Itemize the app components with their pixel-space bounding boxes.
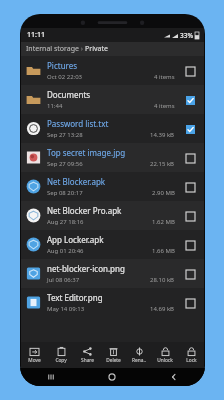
staticText: Oct 02 22:03 <box>47 73 83 81</box>
staticText: Sep 27 13:28 <box>47 131 83 139</box>
staticText: 2.90 MB <box>152 189 175 197</box>
staticText: 1.62 MB <box>152 218 175 226</box>
staticText: 11:44 <box>47 102 63 110</box>
button[interactable]: Text Editor.png <box>21 288 204 317</box>
button[interactable]: Documents <box>21 85 204 114</box>
staticText: 4 items <box>154 73 175 81</box>
staticText: Sep 27 09:56 <box>47 160 83 168</box>
button[interactable]: Unlock <box>152 342 178 368</box>
staticText: 4 items <box>154 102 175 110</box>
staticText: Delete <box>106 357 121 364</box>
staticText: Lock <box>186 357 197 364</box>
staticText: May 14 09:13 <box>47 305 85 313</box>
staticText: net-blocker-icon.png <box>47 263 125 274</box>
staticText: Documents <box>47 89 91 100</box>
button[interactable]: Share <box>74 342 100 368</box>
staticText: 14.39 kB <box>150 131 175 139</box>
button[interactable]: Select Top secret image.jpg <box>181 149 199 167</box>
button[interactable]: Select Documents <box>181 91 199 109</box>
button[interactable]: Internal storage <box>21 42 204 56</box>
button[interactable]: Delete <box>100 342 126 368</box>
staticText: 1.66 MB <box>152 247 175 255</box>
staticText: Password list.txt <box>47 118 109 129</box>
button[interactable]: Back <box>143 368 205 386</box>
button[interactable]: net-blocker-icon.png <box>21 259 204 288</box>
staticText: 33% <box>180 31 193 40</box>
button[interactable]: Lock <box>178 342 204 368</box>
button[interactable]: Move <box>21 342 48 368</box>
staticText: Net Blocker.apk <box>47 176 106 187</box>
button[interactable]: Copy <box>48 342 74 368</box>
staticText: Jul 08 06:37 <box>47 276 80 284</box>
staticText: Pictures <box>47 60 78 71</box>
button[interactable]: Net Blocker Pro.apk <box>21 201 204 230</box>
staticText: Unlock <box>157 357 173 364</box>
button[interactable]: Recents <box>20 368 81 386</box>
staticText: Aug 01 20:46 <box>47 247 84 255</box>
button[interactable]: Select App Locker.apk <box>181 236 199 254</box>
button[interactable]: Net Blocker.apk <box>21 172 204 201</box>
staticText: Private <box>85 44 108 54</box>
staticText: App Locker.apk <box>47 234 104 245</box>
button[interactable]: Select Password list.txt <box>181 120 199 138</box>
button[interactable]: Select Net Blocker Pro.apk <box>181 207 199 225</box>
staticText: Share <box>81 357 94 364</box>
button[interactable]: Select Net Blocker.apk <box>181 178 199 196</box>
staticText: Net Blocker Pro.apk <box>47 205 122 216</box>
button[interactable]: App Locker.apk <box>21 230 204 259</box>
staticText: 28.10 kB <box>150 276 175 284</box>
staticText: Rena.. <box>132 357 146 364</box>
button[interactable]: Rena.. <box>126 342 152 368</box>
staticText: Sep 08 20:17 <box>47 189 83 197</box>
staticText: Top secret image.jpg <box>47 147 126 158</box>
staticText: Text Editor.png <box>47 292 103 303</box>
staticText: 22.15 kB <box>150 160 175 168</box>
button[interactable]: Pictures <box>21 56 204 85</box>
button[interactable]: Select net-blocker-icon.png <box>181 265 199 283</box>
button[interactable]: Top secret image.jpg <box>21 143 204 172</box>
staticText: Aug 27 18:16 <box>47 218 84 226</box>
button[interactable]: Select Text Editor.png <box>181 294 199 312</box>
button[interactable]: Password list.txt <box>21 114 204 143</box>
staticText: 11:11 <box>27 30 45 40</box>
staticText: Copy <box>55 357 67 364</box>
button[interactable]: Home <box>81 368 143 386</box>
staticText: › <box>79 44 85 54</box>
staticText: Internal storage <box>26 44 79 54</box>
staticText: 14.69 kB <box>150 305 175 313</box>
button[interactable]: Select Pictures <box>181 62 199 80</box>
staticText: Move <box>28 357 41 364</box>
